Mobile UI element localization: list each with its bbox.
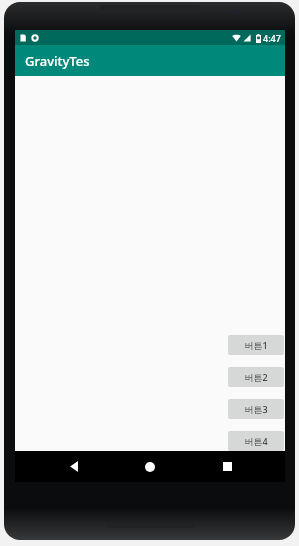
button[interactable]: 버튼2 — [228, 367, 284, 387]
staticText: GravityTes — [25, 52, 90, 70]
button[interactable]: 버튼4 — [228, 431, 284, 451]
staticText: 4:47 — [263, 32, 281, 44]
staticText: 버튼2 — [244, 371, 268, 383]
staticText: 버튼3 — [244, 403, 268, 415]
button[interactable]: Home — [132, 451, 168, 482]
button[interactable]: 버튼3 — [228, 399, 284, 419]
button[interactable]: Back — [56, 451, 92, 482]
staticText: 버튼1 — [244, 339, 268, 351]
staticText: 버튼4 — [244, 435, 268, 447]
button[interactable]: 버튼1 — [228, 335, 284, 355]
button[interactable]: Recent apps — [209, 451, 245, 482]
